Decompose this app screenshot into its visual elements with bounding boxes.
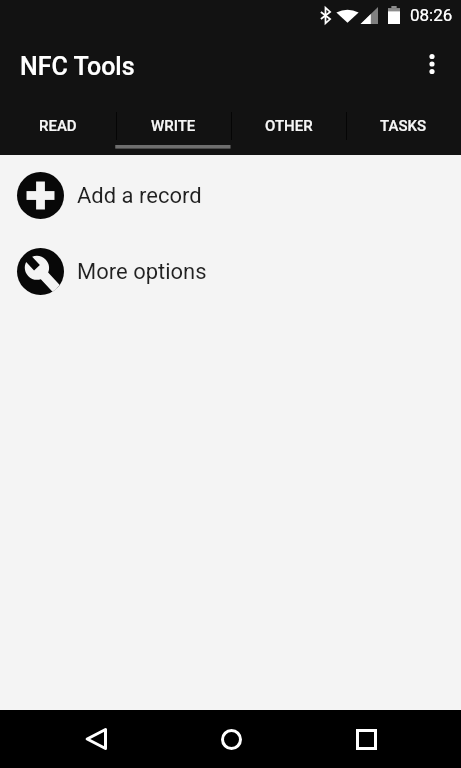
staticText: OTHER	[265, 117, 313, 135]
button[interactable]: Home	[203, 711, 259, 767]
staticText: 08:26	[410, 5, 453, 25]
staticText: READ	[39, 117, 77, 135]
button[interactable]: More options menu	[408, 40, 456, 88]
staticText: WRITE	[151, 117, 196, 135]
staticText: TASKS	[380, 117, 427, 135]
button[interactable]: READ	[0, 100, 116, 155]
button[interactable]: OTHER	[231, 100, 346, 155]
button[interactable]: Add a record	[0, 172, 461, 219]
staticText: More options	[77, 259, 207, 285]
button[interactable]: TASKS	[346, 100, 461, 155]
button[interactable]: More options	[0, 248, 461, 295]
button[interactable]: Recent apps	[338, 711, 394, 767]
staticText: Add a record	[77, 183, 202, 209]
button[interactable]: WRITE	[116, 100, 231, 155]
button[interactable]: Back	[68, 711, 124, 767]
staticText: NFC Tools	[20, 52, 135, 81]
